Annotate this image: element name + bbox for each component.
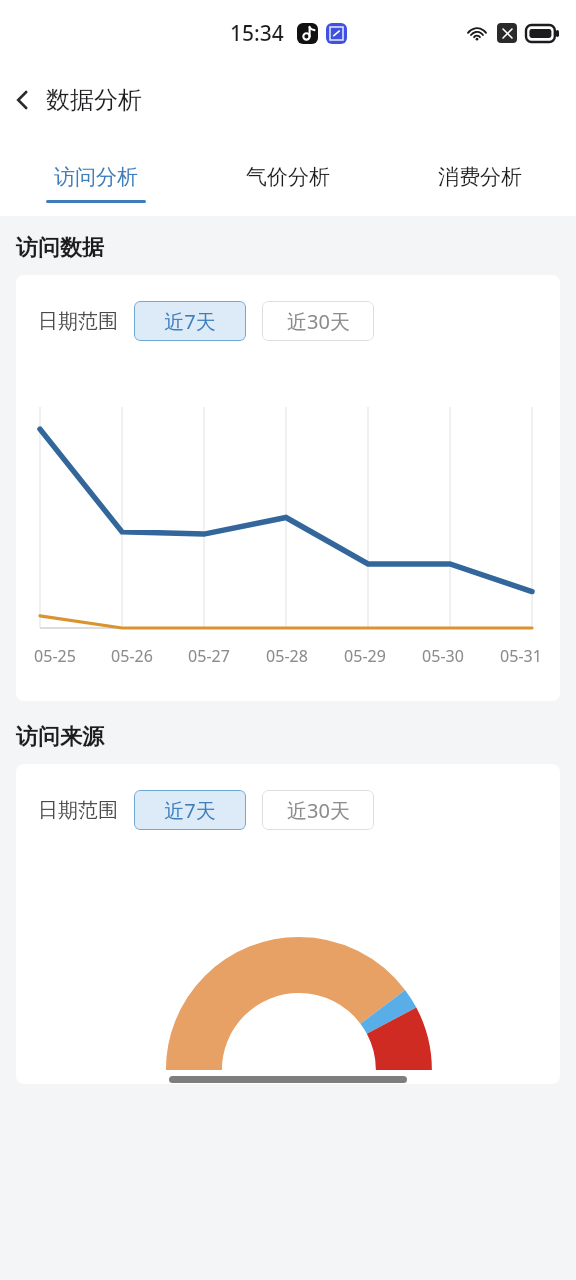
staticText: 消费分析: [438, 164, 522, 190]
button[interactable]: 近7天: [134, 301, 246, 341]
staticText: 05-25: [34, 645, 76, 667]
staticText: 近30天: [287, 308, 350, 335]
button[interactable]: 近30天: [262, 790, 374, 830]
staticText: 数据分析: [46, 85, 142, 115]
staticText: 访问来源: [16, 723, 104, 751]
button[interactable]: Back: [0, 77, 46, 123]
staticText: 气价分析: [246, 164, 330, 190]
staticText: 访问分析: [54, 164, 138, 190]
staticText: 近30天: [287, 797, 350, 824]
staticText: 访问数据: [16, 234, 104, 262]
staticText: 日期范围: [38, 798, 118, 823]
button[interactable]: 近30天: [262, 301, 374, 341]
staticText: 05-28: [266, 645, 308, 667]
staticText: 近7天: [164, 308, 216, 335]
staticText: 15:34: [230, 19, 284, 48]
staticText: 近7天: [164, 797, 216, 824]
staticText: 05-31: [500, 645, 542, 667]
staticText: 05-30: [422, 645, 464, 667]
button[interactable]: 近7天: [134, 790, 246, 830]
staticText: 05-27: [188, 645, 230, 667]
staticText: 05-26: [111, 645, 153, 667]
staticText: 日期范围: [38, 309, 118, 334]
button[interactable]: 消费分析: [384, 134, 576, 216]
staticText: 05-29: [344, 645, 386, 667]
button[interactable]: 访问分析: [0, 134, 192, 216]
button[interactable]: 气价分析: [192, 134, 384, 216]
